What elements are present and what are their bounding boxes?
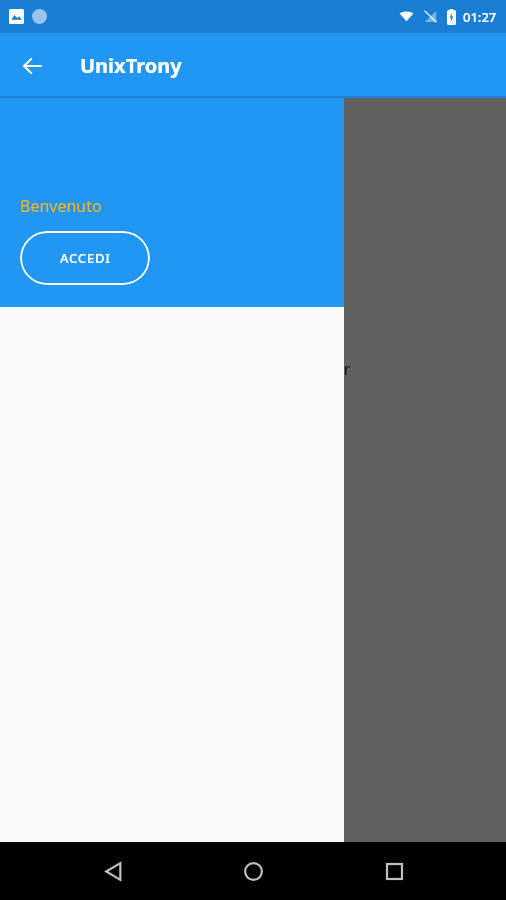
staticText: Benvenuto nella app! [26, 283, 275, 317]
button[interactable]: Recent apps [366, 843, 422, 899]
button[interactable]: Back [8, 42, 56, 90]
button[interactable]: ACCEDI [20, 231, 150, 285]
staticText: UnixTrony [80, 52, 182, 79]
staticText: Effettua l'accesso dal menu a sinistra p… [26, 357, 351, 380]
staticText: Benvenuto [20, 195, 102, 217]
button[interactable]: Home [225, 843, 281, 899]
staticText: 01:27 [463, 8, 497, 26]
button[interactable]: Back [85, 843, 141, 899]
staticText: ACCEDI [60, 249, 111, 267]
